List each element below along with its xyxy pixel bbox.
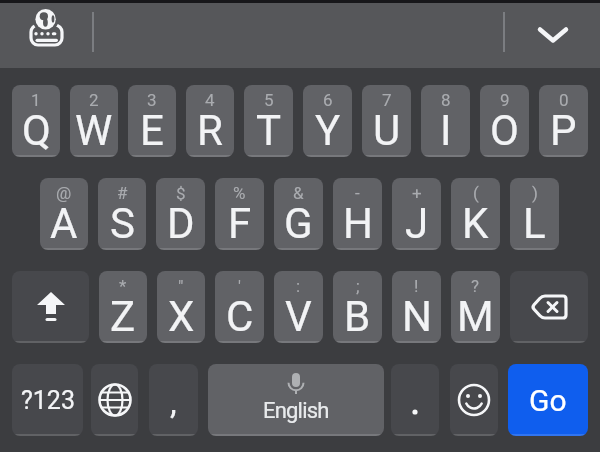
staticText: O xyxy=(490,106,519,155)
button[interactable]: $ xyxy=(156,178,205,250)
staticText: " xyxy=(178,276,184,296)
staticText: X xyxy=(168,292,195,341)
staticText: Q xyxy=(22,106,51,155)
staticText: S xyxy=(110,199,135,248)
button[interactable]: 6 xyxy=(303,85,352,157)
staticText: D xyxy=(167,199,195,248)
staticText: Go xyxy=(529,383,567,418)
staticText: 3 xyxy=(147,90,157,110)
staticText: A xyxy=(50,199,78,248)
staticText: + xyxy=(412,183,422,203)
button[interactable]: ! xyxy=(392,271,441,343)
staticText: B xyxy=(344,292,371,341)
staticText: R xyxy=(197,106,223,155)
staticText: L xyxy=(523,199,546,248)
button[interactable] xyxy=(391,364,439,436)
staticText: G xyxy=(284,199,313,248)
staticText: V xyxy=(285,292,312,341)
button[interactable]: , xyxy=(149,364,198,436)
button[interactable]: Go xyxy=(508,364,588,436)
staticText: 0 xyxy=(559,90,569,110)
button[interactable]: 8 xyxy=(421,85,470,157)
button[interactable]: # xyxy=(98,178,146,250)
staticText: U xyxy=(373,106,401,155)
staticText: H xyxy=(343,199,373,248)
staticText: - xyxy=(355,183,360,203)
staticText: Z xyxy=(110,292,136,341)
button[interactable]: 2 xyxy=(70,85,118,157)
button[interactable]: * xyxy=(99,271,147,343)
button[interactable]: @ xyxy=(40,178,88,250)
staticText: ; xyxy=(356,276,360,296)
button[interactable]: English xyxy=(208,364,384,436)
staticText: English xyxy=(263,398,329,424)
staticText: ? xyxy=(471,276,480,296)
staticText: & xyxy=(293,183,304,203)
staticText: ' xyxy=(238,276,241,296)
staticText: 8 xyxy=(441,90,451,110)
staticText: J xyxy=(405,199,429,248)
button[interactable]: 0 xyxy=(539,85,588,157)
staticText: 5 xyxy=(264,90,274,110)
button[interactable] xyxy=(528,10,578,60)
staticText: 7 xyxy=(382,90,392,110)
staticText: , xyxy=(170,382,177,422)
button[interactable]: 1 xyxy=(12,85,60,157)
staticText: % xyxy=(233,183,246,203)
staticText: @ xyxy=(56,183,72,203)
button[interactable]: ) xyxy=(510,178,559,250)
button[interactable]: & xyxy=(274,178,323,250)
staticText: 9 xyxy=(500,90,510,110)
button[interactable]: 5 xyxy=(244,85,293,157)
button[interactable] xyxy=(91,364,138,436)
staticText: W xyxy=(75,106,113,155)
button[interactable] xyxy=(450,364,498,436)
button[interactable]: 3 xyxy=(128,85,176,157)
button[interactable]: : xyxy=(274,271,323,343)
staticText: N xyxy=(402,292,432,341)
staticText: C xyxy=(226,292,254,341)
button[interactable]: ' xyxy=(215,271,264,343)
staticText: F xyxy=(228,199,252,248)
button[interactable] xyxy=(22,3,72,53)
staticText: T xyxy=(256,106,282,155)
button[interactable]: ( xyxy=(451,178,500,250)
button[interactable]: + xyxy=(392,178,441,250)
button[interactable]: 9 xyxy=(480,85,529,157)
staticText: E xyxy=(140,106,164,155)
button[interactable] xyxy=(510,271,588,343)
staticText: K xyxy=(462,199,489,248)
button[interactable]: % xyxy=(215,178,264,250)
button[interactable]: 7 xyxy=(362,85,411,157)
staticText: $ xyxy=(176,183,186,203)
staticText: ( xyxy=(473,183,479,203)
staticText: : xyxy=(296,276,301,296)
staticText: 6 xyxy=(323,90,333,110)
button[interactable]: ?123 xyxy=(12,364,83,436)
staticText: 1 xyxy=(31,90,41,110)
staticText: Y xyxy=(315,106,341,155)
button[interactable] xyxy=(12,271,89,343)
staticText: * xyxy=(119,276,127,296)
button[interactable]: - xyxy=(333,178,382,250)
staticText: # xyxy=(117,183,128,203)
staticText: I xyxy=(440,106,452,155)
staticText: P xyxy=(550,106,577,155)
button[interactable]: ; xyxy=(333,271,382,343)
button[interactable]: 4 xyxy=(186,85,234,157)
staticText: ! xyxy=(414,276,419,296)
staticText: 2 xyxy=(89,90,99,110)
staticText: ) xyxy=(532,183,538,203)
button[interactable]: " xyxy=(157,271,205,343)
staticText: 4 xyxy=(205,90,215,110)
staticText: ?123 xyxy=(21,386,75,415)
button[interactable]: ? xyxy=(451,271,500,343)
staticText: M xyxy=(457,292,494,341)
